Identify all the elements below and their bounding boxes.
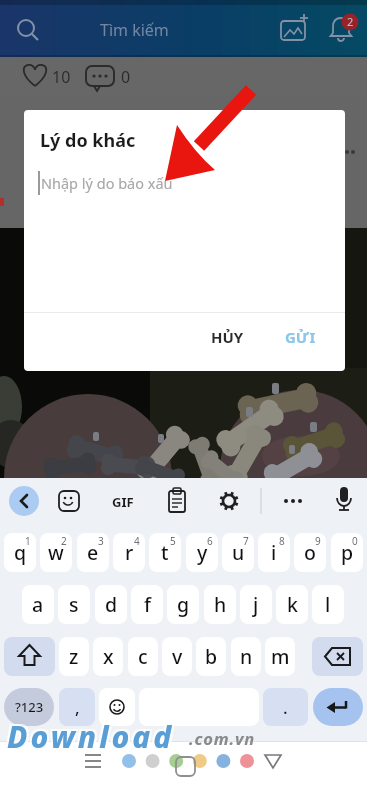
button[interactable] [160,484,194,518]
staticText: 2 [347,14,354,29]
button[interactable]: GỬI [277,318,323,356]
button[interactable]: k [276,585,308,624]
button[interactable]: t [149,533,181,572]
button[interactable] [82,57,134,95]
button[interactable]: l [312,585,344,624]
staticText: j [253,591,259,618]
button[interactable]: i [258,533,290,572]
button[interactable] [313,688,363,726]
button[interactable]: s [58,585,90,624]
button[interactable]: HỦY [205,318,249,356]
button[interactable] [253,743,293,783]
staticText: Tìm kiếm [100,19,169,41]
button[interactable] [272,10,314,50]
button[interactable]: e [77,533,109,572]
button[interactable]: y [186,533,218,572]
staticText: 7 [243,534,249,548]
staticText: 2 [61,534,67,548]
button[interactable]: r [113,533,145,572]
staticText: x [103,643,114,670]
button[interactable] [99,688,135,726]
button[interactable] [324,8,364,50]
staticText: Nhập lý do báo xấu [41,173,173,193]
staticText: , [75,696,80,719]
button[interactable]: g [167,585,199,624]
staticText: g [177,591,190,618]
button[interactable]: h [204,585,236,624]
button[interactable] [20,57,78,95]
staticText: z [69,643,79,670]
staticText: p [341,539,354,566]
staticText: Download [5,718,173,759]
button[interactable]: n [231,637,261,676]
staticText: f [144,591,151,618]
staticText: l [325,591,331,618]
staticText: Download [9,714,177,755]
staticText: 4 [134,534,140,548]
staticText: 10 [52,66,71,88]
button[interactable]: z [59,637,89,676]
button[interactable] [276,484,310,518]
staticText: Download [5,714,173,755]
staticText: k [287,591,298,618]
staticText: 8 [279,534,285,548]
button[interactable] [8,8,263,50]
staticText: h [214,591,227,618]
button[interactable]: p [331,533,363,572]
button[interactable]: c [128,637,158,676]
button[interactable] [106,484,140,518]
button[interactable]: ?123 [4,688,54,726]
staticText: i [271,539,277,566]
staticText: w [48,539,64,566]
staticText: ?123 [15,698,44,716]
staticText: .com.vn [189,727,256,749]
button[interactable]: q [4,533,36,572]
button[interactable]: b [196,637,226,676]
button[interactable] [4,637,55,676]
staticText: 1 [25,534,31,548]
staticText: GIF [112,493,134,511]
button[interactable]: f [131,585,163,624]
button[interactable]: m [265,637,295,676]
button[interactable] [75,743,115,783]
staticText: o [304,539,316,566]
staticText: n [240,643,253,670]
staticText: HỦY [211,327,244,347]
button[interactable]: v [162,637,192,676]
button[interactable]: j [240,585,272,624]
staticText: e [87,539,99,566]
staticText: Lý do khác [40,128,136,153]
staticText: 0 [352,534,358,548]
staticText: q [14,539,27,566]
staticText: 0 [121,66,131,88]
button[interactable] [312,637,363,676]
button[interactable] [139,688,259,726]
button[interactable] [165,743,205,783]
button[interactable]: , [59,688,95,726]
button[interactable] [9,486,39,516]
button[interactable] [327,484,361,518]
staticText: . [283,696,288,719]
button[interactable] [212,484,246,518]
button[interactable]: w [40,533,72,572]
staticText: v [172,643,183,670]
staticText: c [138,643,148,670]
staticText: r [125,539,134,566]
staticText: t [161,539,169,566]
button[interactable]: a [22,585,54,624]
button[interactable]: o [294,533,326,572]
staticText: 6 [207,534,213,548]
staticText: Download [9,718,177,759]
staticText: s [69,591,79,618]
staticText: u [232,539,245,566]
staticText: 3 [98,534,104,548]
staticText: y [197,539,208,566]
button[interactable]: u [222,533,254,572]
button[interactable]: x [93,637,123,676]
button[interactable]: d [95,585,127,624]
button[interactable] [52,484,86,518]
staticText: m [271,643,290,670]
staticText: GỬI [285,327,316,347]
staticText: d [105,591,118,618]
button[interactable]: . [263,688,308,726]
